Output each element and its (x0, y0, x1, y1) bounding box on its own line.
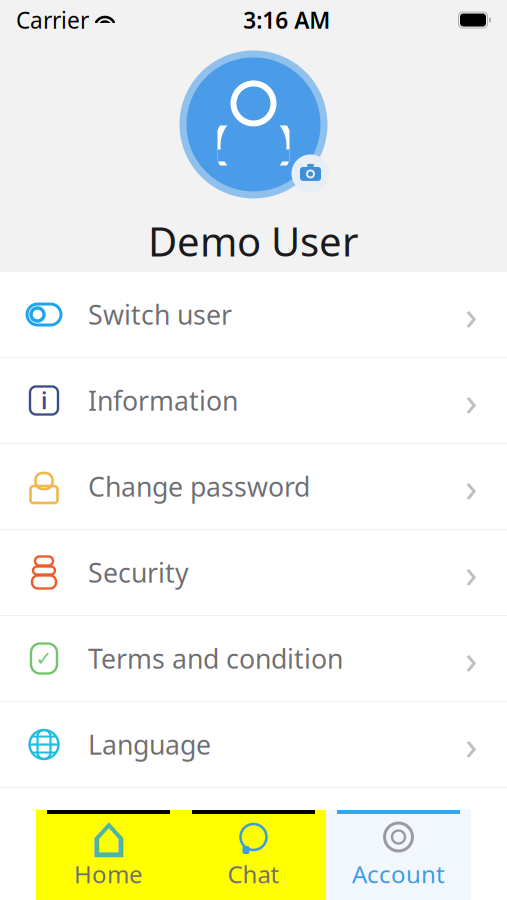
button[interactable]: i (0, 358, 507, 444)
staticText: Account (352, 858, 445, 890)
staticText: Chat (227, 858, 279, 890)
button[interactable]: ✓ (0, 616, 507, 702)
button[interactable]: Switch user (0, 272, 507, 358)
button[interactable]: Security (0, 530, 507, 616)
staticText: › (465, 546, 477, 599)
staticText: Home (74, 858, 143, 890)
button[interactable]: Account (326, 810, 471, 900)
staticText: Switch user (88, 297, 232, 332)
staticText: ✓ (35, 647, 52, 670)
staticText: Change password (88, 469, 310, 504)
staticText: Terms and condition (88, 641, 343, 676)
staticText: › (465, 632, 477, 685)
button[interactable]: Language (0, 702, 507, 788)
staticText: Language (88, 727, 211, 762)
button[interactable]: ⌂ (36, 810, 181, 900)
button[interactable]: Chat (181, 810, 326, 900)
staticText: › (465, 718, 477, 771)
staticText: › (465, 374, 477, 427)
staticText: › (465, 460, 477, 513)
button[interactable]: Change password (0, 444, 507, 530)
staticText: i (41, 385, 47, 415)
staticText: Demo User (148, 214, 359, 267)
staticText: Carrier (16, 5, 89, 35)
staticText: ⌂ (90, 804, 127, 870)
staticText: Security (88, 555, 189, 590)
staticText: Information (88, 383, 238, 418)
staticText: 3:16 AM (243, 5, 330, 35)
staticText: › (465, 288, 477, 341)
staticText: Feedback (88, 813, 206, 849)
